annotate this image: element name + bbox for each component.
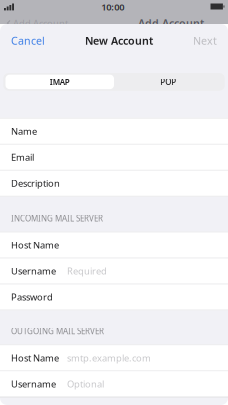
staticText: Optional [67, 378, 104, 390]
button[interactable]: IMAP [5, 75, 114, 89]
staticText: Username [11, 265, 56, 277]
staticText: IMAP [50, 77, 70, 87]
staticText: POP [160, 77, 176, 87]
button[interactable]: Cancel [0, 24, 53, 57]
button[interactable]: Username [0, 371, 228, 396]
staticText: Description [11, 177, 60, 189]
staticText: Host Name [11, 352, 59, 364]
staticText: Add Account [13, 17, 68, 29]
button[interactable]: Host Name [0, 345, 228, 370]
staticText: Email [11, 151, 34, 163]
button[interactable]: Host Name [0, 232, 228, 258]
button[interactable]: Next [185, 24, 228, 57]
button[interactable]: Description [0, 170, 228, 196]
staticText: Cancel [11, 33, 45, 48]
button[interactable]: Email [0, 144, 228, 170]
staticText: Name [11, 125, 37, 137]
staticText: Password [11, 291, 53, 303]
staticText: 10:00 [101, 1, 124, 13]
staticText: OUTGOING MAIL SERVER [11, 326, 104, 336]
button[interactable]: Password [0, 284, 228, 310]
staticText: New Account [85, 33, 153, 48]
button[interactable]: POP [114, 75, 222, 89]
staticText: INCOMING MAIL SERVER [11, 213, 103, 224]
staticText: Required [67, 265, 107, 277]
staticText: Host Name [11, 239, 59, 251]
staticText: Next [193, 33, 217, 48]
staticText: Add Account [138, 16, 204, 30]
staticText: Username [11, 378, 56, 390]
button[interactable]: Username [0, 258, 228, 284]
staticText: smtp.example.com [67, 352, 151, 364]
button[interactable]: Name [0, 118, 228, 144]
